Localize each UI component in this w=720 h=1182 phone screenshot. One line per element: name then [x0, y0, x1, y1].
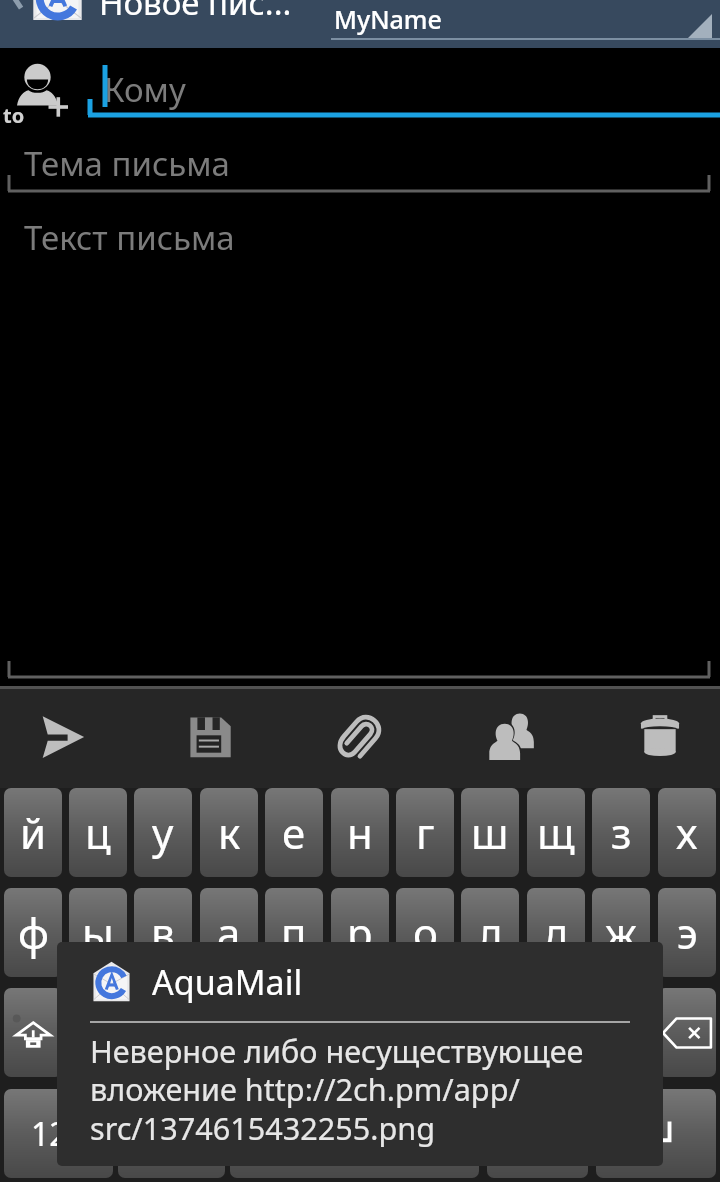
staticText: м [278, 1004, 311, 1061]
button[interactable]: Contacts [446, 686, 578, 788]
staticText: Тема письма [24, 141, 230, 186]
button[interactable]: у [134, 788, 192, 877]
staticText: Неверное либо несуществующее вложение ht… [90, 1030, 655, 1149]
button[interactable]: ю [592, 988, 650, 1077]
button[interactable]: Save [144, 686, 276, 788]
staticText: э [677, 904, 698, 961]
staticText: to [3, 102, 25, 129]
staticText: г [416, 804, 435, 861]
staticText: л [478, 904, 503, 961]
button[interactable]: ж [592, 888, 650, 977]
staticText: р [347, 904, 373, 961]
button[interactable]: MyName [331, 0, 720, 48]
button[interactable]: Send [0, 686, 128, 788]
button[interactable]: ь [461, 988, 519, 1077]
button[interactable]: в [134, 888, 192, 977]
staticText: ч [151, 1004, 176, 1061]
staticText: ф [18, 904, 49, 961]
button[interactable]: Add recipient [2, 50, 82, 122]
staticText: Кому [104, 67, 186, 112]
staticText: у [152, 804, 174, 861]
staticText: о [413, 904, 438, 961]
staticText: ы [82, 904, 114, 961]
staticText: й [20, 804, 47, 861]
staticText: AquaMail [152, 959, 303, 1005]
staticText: и [347, 1004, 374, 1061]
staticText: в [151, 904, 175, 961]
button[interactable]: ш [461, 788, 519, 877]
button[interactable]: 123 [4, 1089, 113, 1178]
button[interactable]: Backspace [658, 988, 716, 1077]
button[interactable]: м [265, 988, 323, 1077]
staticText: Текст письма [24, 215, 235, 260]
staticText: я [86, 1004, 111, 1061]
button[interactable]: Shift [4, 988, 62, 1077]
button[interactable]: Change keyboard [118, 1089, 225, 1178]
button[interactable]: х [658, 788, 716, 877]
button[interactable]: Space [230, 1089, 479, 1178]
staticText: MyName [334, 2, 442, 36]
staticText: к [218, 804, 241, 861]
staticText: ш [471, 804, 509, 861]
button[interactable]: с [200, 988, 258, 1077]
staticText: т [415, 1004, 435, 1061]
button[interactable]: з [592, 788, 650, 877]
staticText: с [219, 1004, 240, 1061]
staticText: б [543, 1004, 569, 1061]
staticText: Новое пис... [99, 0, 292, 25]
button[interactable]: и [331, 988, 389, 1077]
button[interactable]: б [527, 988, 585, 1077]
button[interactable]: е [265, 788, 323, 877]
button[interactable]: р [331, 888, 389, 977]
button[interactable]: Attach [294, 686, 426, 788]
button[interactable]: г [396, 788, 454, 877]
staticText: 123 [31, 1112, 86, 1156]
button[interactable]: н [331, 788, 389, 877]
staticText: щ [537, 804, 575, 861]
button[interactable]: Текст письма [0, 193, 720, 679]
button[interactable]: . [487, 1089, 588, 1178]
button[interactable]: д [527, 888, 585, 977]
button[interactable]: о [396, 888, 454, 977]
staticText: ю [604, 1004, 638, 1061]
button[interactable]: п [265, 888, 323, 977]
button[interactable]: т [396, 988, 454, 1077]
staticText: а [217, 904, 241, 961]
staticText: н [347, 804, 373, 861]
staticText: ж [605, 904, 637, 961]
button[interactable]: я [69, 988, 127, 1077]
button[interactable]: л [461, 888, 519, 977]
button[interactable]: ц [69, 788, 127, 877]
button[interactable]: э [658, 888, 716, 977]
staticText: е [282, 804, 306, 861]
button[interactable]: Тема письма [0, 130, 720, 193]
button[interactable]: ф [4, 888, 62, 977]
button[interactable]: щ [527, 788, 585, 877]
staticText: ь [479, 1004, 502, 1061]
button[interactable]: Back [0, 0, 34, 12]
staticText: п [281, 904, 307, 961]
button[interactable]: ы [69, 888, 127, 977]
button[interactable]: Enter [596, 1089, 716, 1178]
button[interactable]: а [200, 888, 258, 977]
staticText: ц [85, 804, 111, 861]
button[interactable]: к [200, 788, 258, 877]
staticText: з [611, 804, 632, 861]
button[interactable]: ч [134, 988, 192, 1077]
button[interactable]: й [4, 788, 62, 877]
button[interactable]: Delete [594, 686, 720, 788]
staticText: х [676, 804, 698, 861]
staticText: д [543, 904, 569, 961]
